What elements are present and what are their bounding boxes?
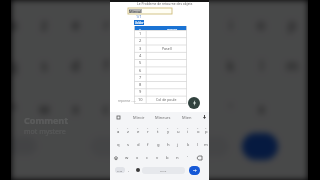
staticText: t — [157, 129, 159, 135]
staticText: 10 — [138, 97, 143, 102]
staticText: p — [205, 129, 208, 135]
button[interactable]: FR-FR — [142, 167, 185, 174]
staticText: g — [157, 142, 160, 148]
button[interactable]: Valider — [134, 20, 144, 25]
staticText: 3 — [139, 46, 142, 51]
staticText: n — [176, 155, 179, 161]
staticText: ' — [187, 155, 188, 161]
button[interactable]: h — [163, 139, 173, 150]
staticText: f — [147, 142, 149, 148]
staticText: 2 — [139, 38, 142, 43]
staticText: z — [127, 129, 129, 135]
staticText: N — [139, 27, 141, 30]
staticText: 3 — [137, 127, 139, 130]
staticText: reponse ...... — [118, 99, 137, 103]
button[interactable]: Mien — [175, 112, 199, 122]
staticText: ^ — [11, 99, 18, 117]
staticText: w — [125, 155, 129, 161]
button[interactable]: , — [125, 165, 133, 175]
staticText: n — [195, 99, 204, 117]
staticText: e — [137, 129, 140, 135]
staticText: p — [288, 15, 297, 33]
button[interactable]: Flash action — [188, 97, 200, 109]
staticText: 9 — [197, 127, 199, 130]
staticText: a — [11, 15, 18, 33]
button[interactable]: s — [123, 139, 133, 150]
button[interactable]: ?123 — [115, 167, 125, 173]
staticText: t — [135, 15, 140, 33]
staticText: m — [204, 142, 208, 148]
button[interactable]: ' — [182, 152, 192, 163]
staticText: b — [166, 155, 169, 161]
button[interactable]: p — [203, 126, 209, 137]
button[interactable]: x — [132, 152, 142, 163]
button[interactable]: k — [183, 139, 193, 150]
button[interactable]: Backspace — [192, 152, 206, 163]
button[interactable]: m — [203, 139, 209, 150]
button[interactable]: j — [173, 139, 183, 150]
staticText: 7 — [177, 127, 179, 130]
staticText: Miroul — [129, 9, 142, 13]
button[interactable]: o — [193, 126, 203, 137]
staticText: 1 — [139, 31, 142, 36]
button[interactable]: w — [122, 152, 132, 163]
staticText: y — [167, 129, 170, 135]
staticText: 6 — [139, 68, 142, 73]
button[interactable]: Miroul — [128, 8, 172, 14]
button[interactable]: t — [153, 126, 163, 137]
staticText: w — [39, 99, 50, 117]
staticText: x — [136, 155, 139, 161]
staticText: v — [134, 99, 141, 117]
staticText: → — [193, 168, 197, 173]
button[interactable]: d — [133, 139, 143, 150]
staticText: Col de poule — [156, 97, 177, 102]
button[interactable]: v — [152, 152, 162, 163]
staticText: m — [286, 56, 299, 74]
button[interactable]: n — [172, 152, 182, 163]
button[interactable]: z — [123, 126, 133, 137]
staticText: Mineurs — [155, 115, 171, 120]
staticText: Comment — [24, 114, 69, 126]
staticText: 4 — [139, 53, 142, 58]
staticText: Reponse — [167, 27, 178, 30]
button[interactable]: c — [142, 152, 152, 163]
button[interactable]: q — [113, 139, 123, 150]
button[interactable]: g — [153, 139, 163, 150]
button[interactable]: Clipboard — [110, 112, 127, 122]
staticText: 5 — [139, 60, 142, 65]
staticText: 9 — [139, 89, 142, 94]
staticText: 1 — [117, 127, 119, 130]
button[interactable]: Emoji — [133, 165, 142, 175]
button[interactable]: Shift — [110, 152, 122, 163]
button[interactable]: l — [193, 139, 203, 150]
staticText: 1/1 — [136, 14, 142, 19]
staticText: u — [177, 129, 180, 135]
staticText: h — [167, 142, 170, 148]
staticText: 2 — [127, 127, 129, 130]
button[interactable]: Miroir — [127, 112, 151, 122]
staticText: Valider — [135, 21, 144, 25]
button[interactable]: b — [162, 152, 172, 163]
button[interactable]: f — [143, 139, 153, 150]
staticText: l — [197, 142, 199, 148]
button[interactable]: More suggestions — [199, 112, 209, 122]
staticText: ?123 — [117, 169, 123, 172]
button[interactable]: a — [113, 126, 123, 137]
button[interactable]: u — [173, 126, 183, 137]
button[interactable]: r — [143, 126, 153, 137]
button[interactable]: i — [183, 126, 193, 137]
button[interactable]: Enter — [189, 166, 200, 175]
button[interactable]: e — [133, 126, 143, 137]
staticText: Le Probleme de retourne des objets — [137, 1, 193, 5]
staticText: q — [11, 56, 18, 74]
button[interactable]: Mineurs — [151, 112, 175, 122]
button[interactable]: y — [163, 126, 173, 137]
staticText: 8 — [187, 127, 189, 130]
staticText: a — [117, 129, 120, 135]
